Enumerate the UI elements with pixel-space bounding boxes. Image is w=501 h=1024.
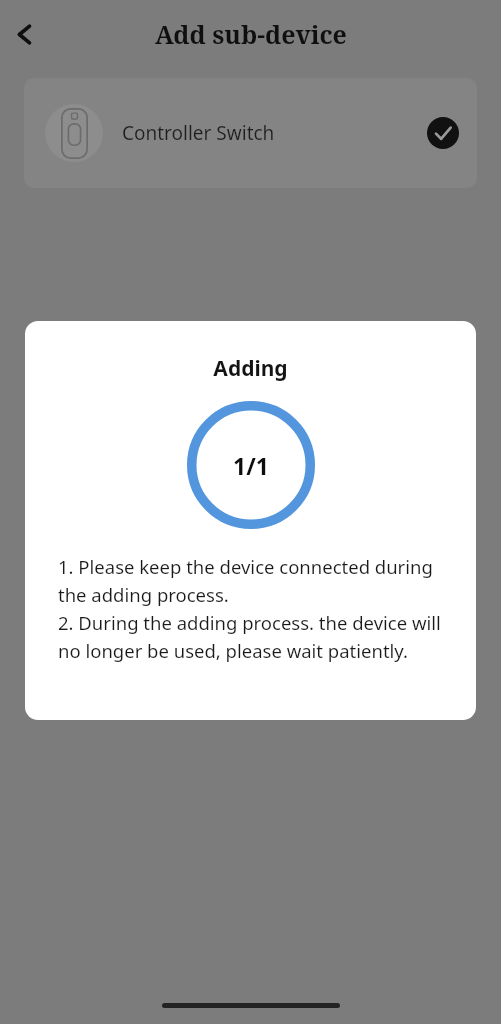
- button[interactable]: Selected: [427, 117, 459, 149]
- button[interactable]: Controller Switch: [24, 78, 477, 188]
- button[interactable]: Back: [2, 12, 46, 56]
- staticText: 1/1: [233, 450, 269, 481]
- staticText: Adding: [25, 354, 476, 383]
- staticText: Controller Switch: [122, 120, 275, 146]
- staticText: Add sub-device: [155, 17, 347, 51]
- staticText: 1. Please keep the device connected duri…: [58, 554, 458, 663]
